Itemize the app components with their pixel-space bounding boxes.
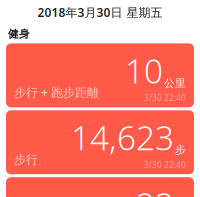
staticText: 2018年3月30日 星期五 (37, 4, 162, 20)
button[interactable]: 步行 + 跑步距離 (6, 43, 194, 107)
staticText: 健身 (8, 27, 30, 40)
staticText: 14,623 (71, 115, 174, 160)
staticText: 22 (136, 182, 174, 197)
staticText: 10 (125, 48, 163, 93)
staticText: 3/30 22:40 (144, 160, 186, 170)
staticText: 公里 (164, 77, 186, 90)
button[interactable]: 步行 (6, 110, 194, 174)
staticText: 步 (175, 143, 186, 157)
button[interactable]: 攀樓梯段數 (6, 177, 194, 197)
staticText: 3/30 22:40 (144, 93, 186, 103)
staticText: 步行 (14, 152, 38, 167)
staticText: 步行 + 跑步距離 (14, 84, 99, 100)
